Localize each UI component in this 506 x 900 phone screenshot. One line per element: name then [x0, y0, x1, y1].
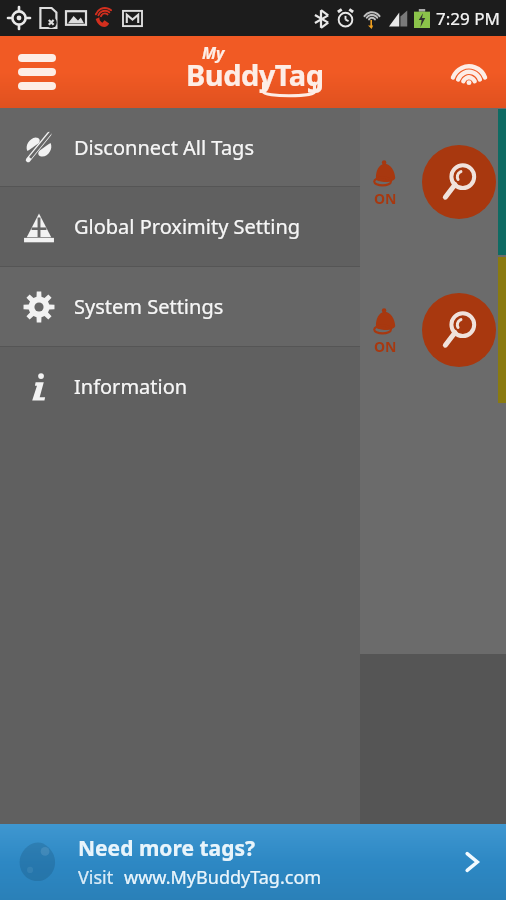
button[interactable]: Open navigation drawer	[8, 43, 66, 101]
staticText: Global Proximity Setting	[74, 213, 301, 240]
button[interactable]: Alarm on	[354, 151, 416, 213]
button[interactable]: Need more tags?	[0, 824, 506, 900]
button[interactable]: Find tag	[422, 293, 496, 367]
staticText: Need more tags?	[78, 834, 255, 863]
staticText: Information	[74, 373, 188, 400]
button[interactable]: Information	[0, 347, 360, 426]
button[interactable]: Alarm on	[354, 299, 416, 361]
staticText: Disconnect All Tags	[74, 134, 254, 161]
staticText: ON	[374, 189, 397, 208]
button[interactable]: Global Proximity Setting	[0, 187, 360, 266]
button[interactable]: Find tag	[422, 145, 496, 219]
staticText: www.MyBuddyTag.com	[124, 865, 322, 890]
staticText: Visit	[78, 865, 114, 890]
button[interactable]: System Settings	[0, 267, 360, 346]
staticText: My	[202, 42, 225, 64]
staticText: BuddyTag	[186, 55, 324, 94]
staticText: 7:29 PM	[436, 7, 500, 30]
staticText: System Settings	[74, 293, 224, 320]
button[interactable]: Open website	[454, 844, 490, 880]
button[interactable]: Disconnect All Tags	[0, 108, 360, 186]
staticText: ON	[374, 337, 397, 356]
button[interactable]: Wi-Fi status	[442, 45, 496, 99]
